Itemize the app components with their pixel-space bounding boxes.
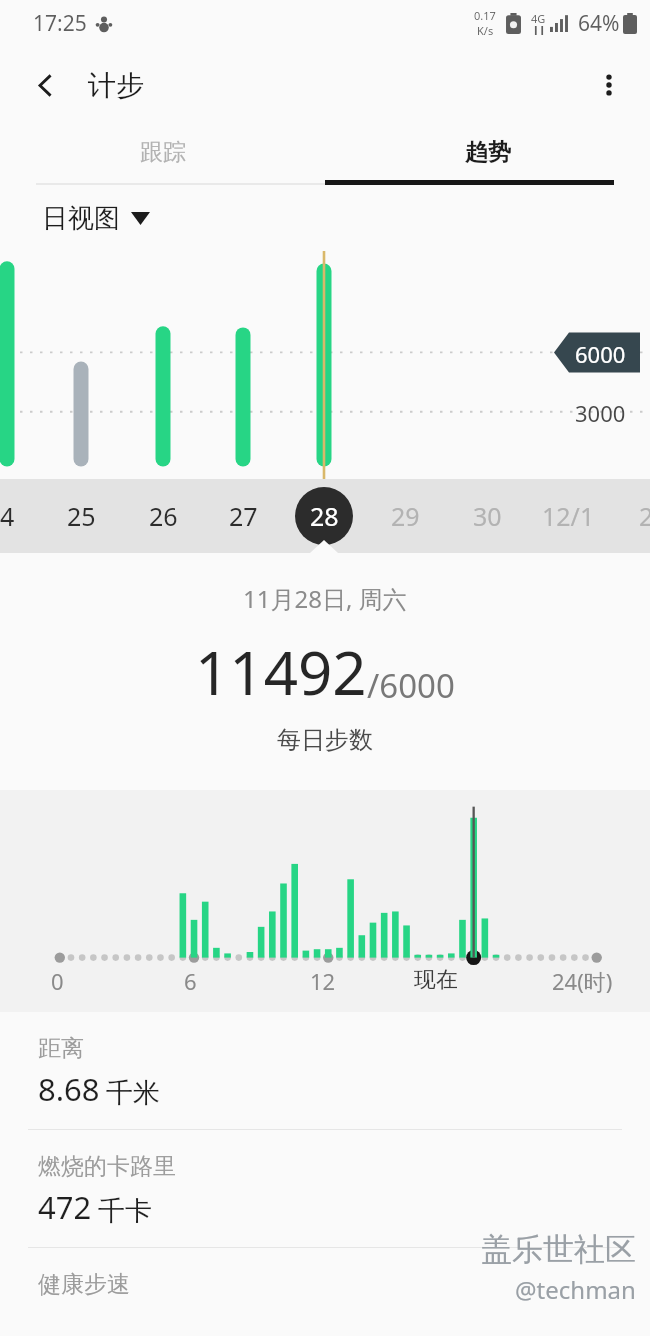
staticText: 距离	[38, 1034, 84, 1063]
staticText: 0.17	[474, 8, 496, 23]
staticText: 11492	[195, 631, 367, 713]
button[interactable]: 30	[457, 486, 517, 546]
button[interactable]: More options	[584, 60, 634, 110]
staticText: 28	[310, 499, 339, 533]
staticText: 日视图	[42, 202, 120, 235]
staticText: 8.68	[38, 1068, 100, 1110]
staticText: 趋势	[465, 138, 511, 167]
button[interactable]: 25	[51, 486, 111, 546]
staticText: 11月28日, 周六	[243, 582, 407, 615]
staticText: 29	[391, 499, 420, 533]
staticText: 25	[67, 499, 96, 533]
staticText: /6000	[367, 663, 455, 708]
staticText: 现在	[414, 966, 458, 994]
staticText: 2	[639, 499, 650, 533]
staticText: 17:25	[33, 9, 87, 38]
staticText: 燃烧的卡路里	[38, 1152, 176, 1181]
staticText: 每日步数	[277, 725, 373, 755]
staticText: 4	[0, 499, 15, 533]
button[interactable]: 4	[0, 486, 37, 546]
button[interactable]: 日视图	[42, 202, 150, 235]
staticText: K/s	[477, 23, 494, 38]
staticText: 计步	[88, 68, 144, 103]
staticText: 27	[229, 499, 258, 533]
staticText: 4G	[531, 11, 546, 26]
button[interactable]: 29	[375, 486, 435, 546]
staticText: 跟踪	[140, 138, 186, 167]
staticText: 24(时)	[552, 966, 613, 996]
button[interactable]: 跟踪	[0, 124, 325, 180]
button[interactable]: 健康步速	[0, 1248, 650, 1299]
staticText: 6000	[575, 339, 626, 369]
staticText: 0	[51, 966, 64, 996]
staticText: 健康步速	[38, 1270, 130, 1299]
button[interactable]: 12/1	[538, 486, 598, 546]
staticText: 30	[473, 499, 502, 533]
button[interactable]: Back	[20, 60, 70, 110]
button[interactable]: 燃烧的卡路里	[0, 1130, 650, 1247]
staticText: 472	[38, 1186, 92, 1228]
staticText: 64%	[578, 9, 620, 38]
button[interactable]: 趋势	[325, 124, 650, 180]
staticText: 3000	[575, 398, 626, 428]
staticText: 千卡	[98, 1194, 152, 1228]
staticText: 千米	[106, 1076, 160, 1110]
staticText: 12/1	[542, 499, 595, 533]
staticText: 盖乐世社区	[481, 1230, 636, 1269]
button[interactable]: 距离	[0, 1012, 650, 1129]
button[interactable]: 2	[616, 486, 650, 546]
staticText: 12	[310, 966, 336, 996]
button[interactable]: 27	[213, 486, 273, 546]
button[interactable]: 28	[294, 486, 354, 546]
staticText: 6	[184, 966, 197, 996]
button[interactable]: 26	[133, 486, 193, 546]
staticText: 26	[149, 499, 178, 533]
staticText: @techman	[515, 1273, 636, 1306]
